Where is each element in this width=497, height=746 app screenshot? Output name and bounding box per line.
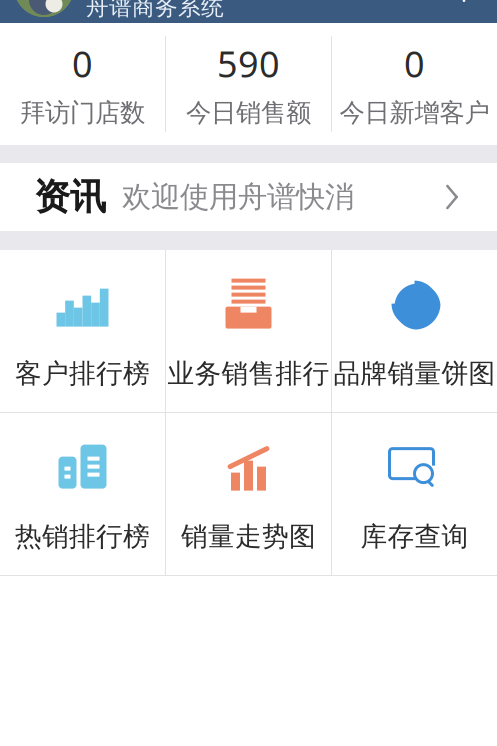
button[interactable]: 销量走势图 bbox=[166, 413, 331, 575]
staticText: 库存查询 bbox=[360, 520, 468, 553]
staticText: 欢迎使用舟谱快消 bbox=[122, 179, 354, 215]
staticText: 0 bbox=[72, 39, 93, 87]
button[interactable]: 0 bbox=[0, 23, 165, 145]
staticText: 0 bbox=[404, 39, 425, 87]
button[interactable]: 热销排行榜 bbox=[0, 413, 165, 575]
button[interactable]: max bbox=[14, 0, 224, 21]
button[interactable]: 业务销售排行 bbox=[166, 250, 331, 412]
staticText: 590 bbox=[217, 39, 280, 87]
staticText: 今日销售额 bbox=[186, 97, 311, 128]
staticText: 热销排行榜 bbox=[15, 520, 150, 553]
staticText: 品牌销量饼图 bbox=[333, 357, 495, 390]
button[interactable]: 客户排行榜 bbox=[0, 250, 165, 412]
button[interactable]: 资讯 bbox=[0, 163, 497, 231]
staticText: 客户排行榜 bbox=[15, 357, 150, 390]
button[interactable]: 库存查询 bbox=[332, 413, 497, 575]
button[interactable]: 590 bbox=[166, 23, 331, 145]
staticText: 业务销售排行 bbox=[167, 357, 329, 390]
staticText: 舟谱商务系统 bbox=[86, 0, 224, 21]
staticText: 今日新增客户 bbox=[339, 97, 489, 128]
staticText: 拜访门店数 bbox=[20, 97, 145, 128]
button[interactable]: 0 bbox=[332, 23, 497, 145]
staticText: 资讯 bbox=[34, 175, 106, 219]
button[interactable]: 品牌销量饼图 bbox=[332, 250, 497, 412]
staticText: 销量走势图 bbox=[181, 520, 316, 553]
button[interactable]: 添加 bbox=[439, 0, 489, 12]
